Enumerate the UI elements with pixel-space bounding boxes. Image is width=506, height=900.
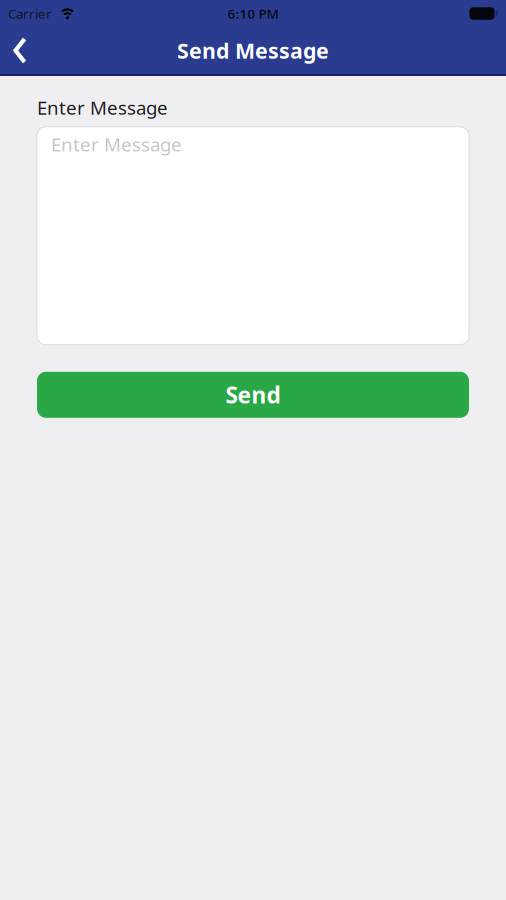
staticText: Carrier xyxy=(8,5,52,22)
staticText: Enter Message xyxy=(37,95,168,120)
button[interactable]: Back xyxy=(0,27,41,74)
staticText: Send Message xyxy=(177,36,329,65)
button[interactable]: Send xyxy=(37,372,469,418)
staticText: Send xyxy=(225,380,280,410)
staticText: 6:10 PM xyxy=(227,5,278,22)
staticText: Enter Message xyxy=(51,132,182,157)
button[interactable]: Enter Message xyxy=(37,127,469,345)
